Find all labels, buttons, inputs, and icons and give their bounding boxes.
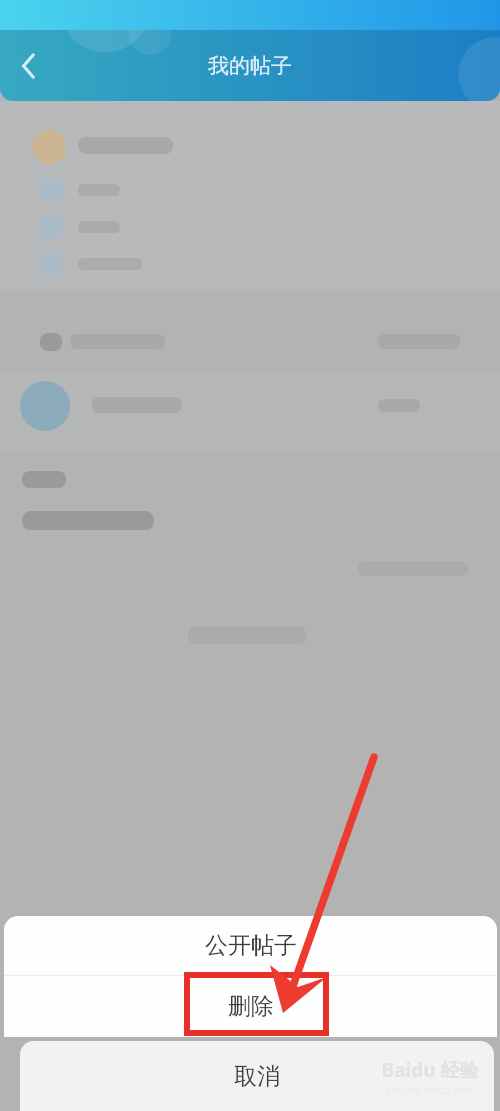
- button[interactable]: 公开帖子: [4, 916, 497, 975]
- button[interactable]: 取消: [20, 1041, 494, 1111]
- button[interactable]: Back: [6, 41, 52, 91]
- button[interactable]: 删除: [4, 976, 497, 1037]
- staticText: 删除: [228, 992, 274, 1021]
- staticText: Baidu 经验: [370, 1057, 490, 1083]
- staticText: 公开帖子: [205, 931, 297, 960]
- staticText: 我的帖子: [208, 53, 292, 79]
- staticText: 取消: [234, 1062, 280, 1091]
